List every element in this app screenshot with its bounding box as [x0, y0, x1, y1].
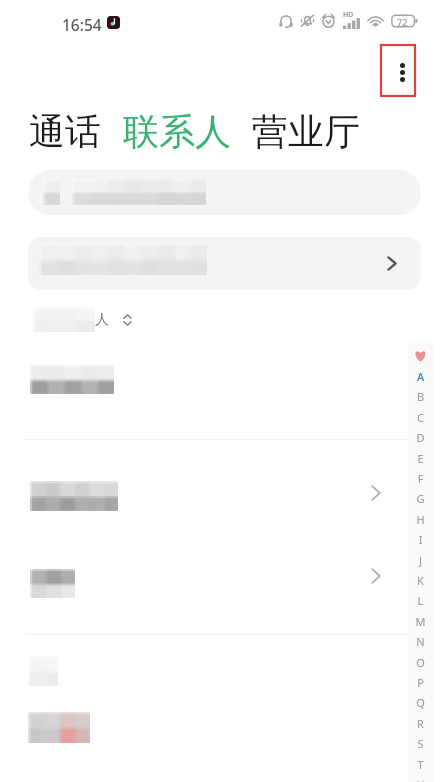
button[interactable] — [0, 635, 440, 700]
button[interactable] — [0, 547, 440, 634]
staticText: F — [408, 471, 433, 486]
button[interactable] — [28, 237, 421, 290]
staticText: P — [408, 675, 433, 690]
button[interactable]: Sort order — [115, 307, 139, 333]
staticText: R — [408, 716, 433, 731]
staticText: 16:54 — [62, 14, 102, 35]
staticText: J — [408, 553, 433, 568]
button[interactable]: Search — [28, 170, 421, 215]
button[interactable] — [0, 700, 440, 782]
staticText: H — [408, 512, 433, 527]
staticText: 72 — [397, 16, 408, 28]
button[interactable]: 通话 — [29, 109, 103, 153]
staticText: 联系人 — [123, 109, 231, 153]
button[interactable]: 营业厅 — [252, 109, 362, 153]
staticText: C — [408, 410, 433, 425]
staticText: D — [408, 430, 433, 445]
staticText: S — [408, 736, 433, 751]
staticText: B — [408, 389, 433, 404]
staticText: Q — [408, 695, 433, 710]
staticText: 人 — [95, 311, 109, 329]
staticText: G — [408, 491, 433, 506]
staticText: K — [408, 573, 433, 588]
staticText: M — [408, 614, 433, 629]
button[interactable]: 联系人 — [123, 109, 233, 153]
staticText: E — [408, 451, 433, 466]
staticText: 营业厅 — [252, 109, 360, 153]
staticText: N — [408, 634, 433, 649]
staticText: U — [408, 777, 433, 782]
button[interactable] — [0, 343, 440, 439]
staticText: HD — [343, 10, 354, 20]
staticText: O — [408, 655, 433, 670]
staticText: A — [408, 369, 433, 384]
staticText: T — [408, 757, 433, 772]
staticText: I — [408, 532, 433, 547]
button[interactable]: Alphabet index — [408, 340, 433, 782]
staticText: 通话 — [29, 109, 101, 153]
button[interactable] — [0, 440, 440, 547]
staticText: L — [408, 593, 433, 608]
button[interactable]: More options — [380, 44, 416, 97]
